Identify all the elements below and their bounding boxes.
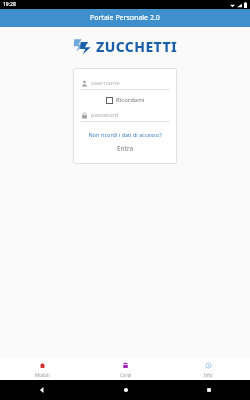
staticText: Moduli	[35, 372, 50, 378]
staticText: Portale Personale 2.0	[90, 13, 160, 23]
staticText: Info	[204, 372, 213, 378]
staticText: Entra	[117, 144, 134, 153]
button[interactable]: Non ricordi i dati di accesso?	[81, 131, 169, 138]
staticText: Corpi	[120, 372, 132, 378]
button[interactable]: Entra	[81, 144, 169, 153]
button[interactable]: Corpi	[84, 358, 167, 380]
staticText: password	[91, 111, 119, 119]
button[interactable]: Recent apps	[167, 380, 250, 400]
staticText: ZUCCHETTI	[96, 37, 178, 56]
button[interactable]: Back	[0, 380, 84, 400]
staticText: username	[91, 79, 120, 87]
staticText: Ricordami	[116, 96, 145, 104]
button[interactable]: Ricordami	[106, 96, 145, 104]
button[interactable]: Home	[84, 380, 167, 400]
button[interactable]: Info	[167, 358, 250, 380]
button[interactable]: Moduli	[0, 358, 84, 380]
staticText: 19:28	[3, 1, 16, 8]
staticText: Non ricordi i dati di accesso?	[88, 131, 162, 138]
